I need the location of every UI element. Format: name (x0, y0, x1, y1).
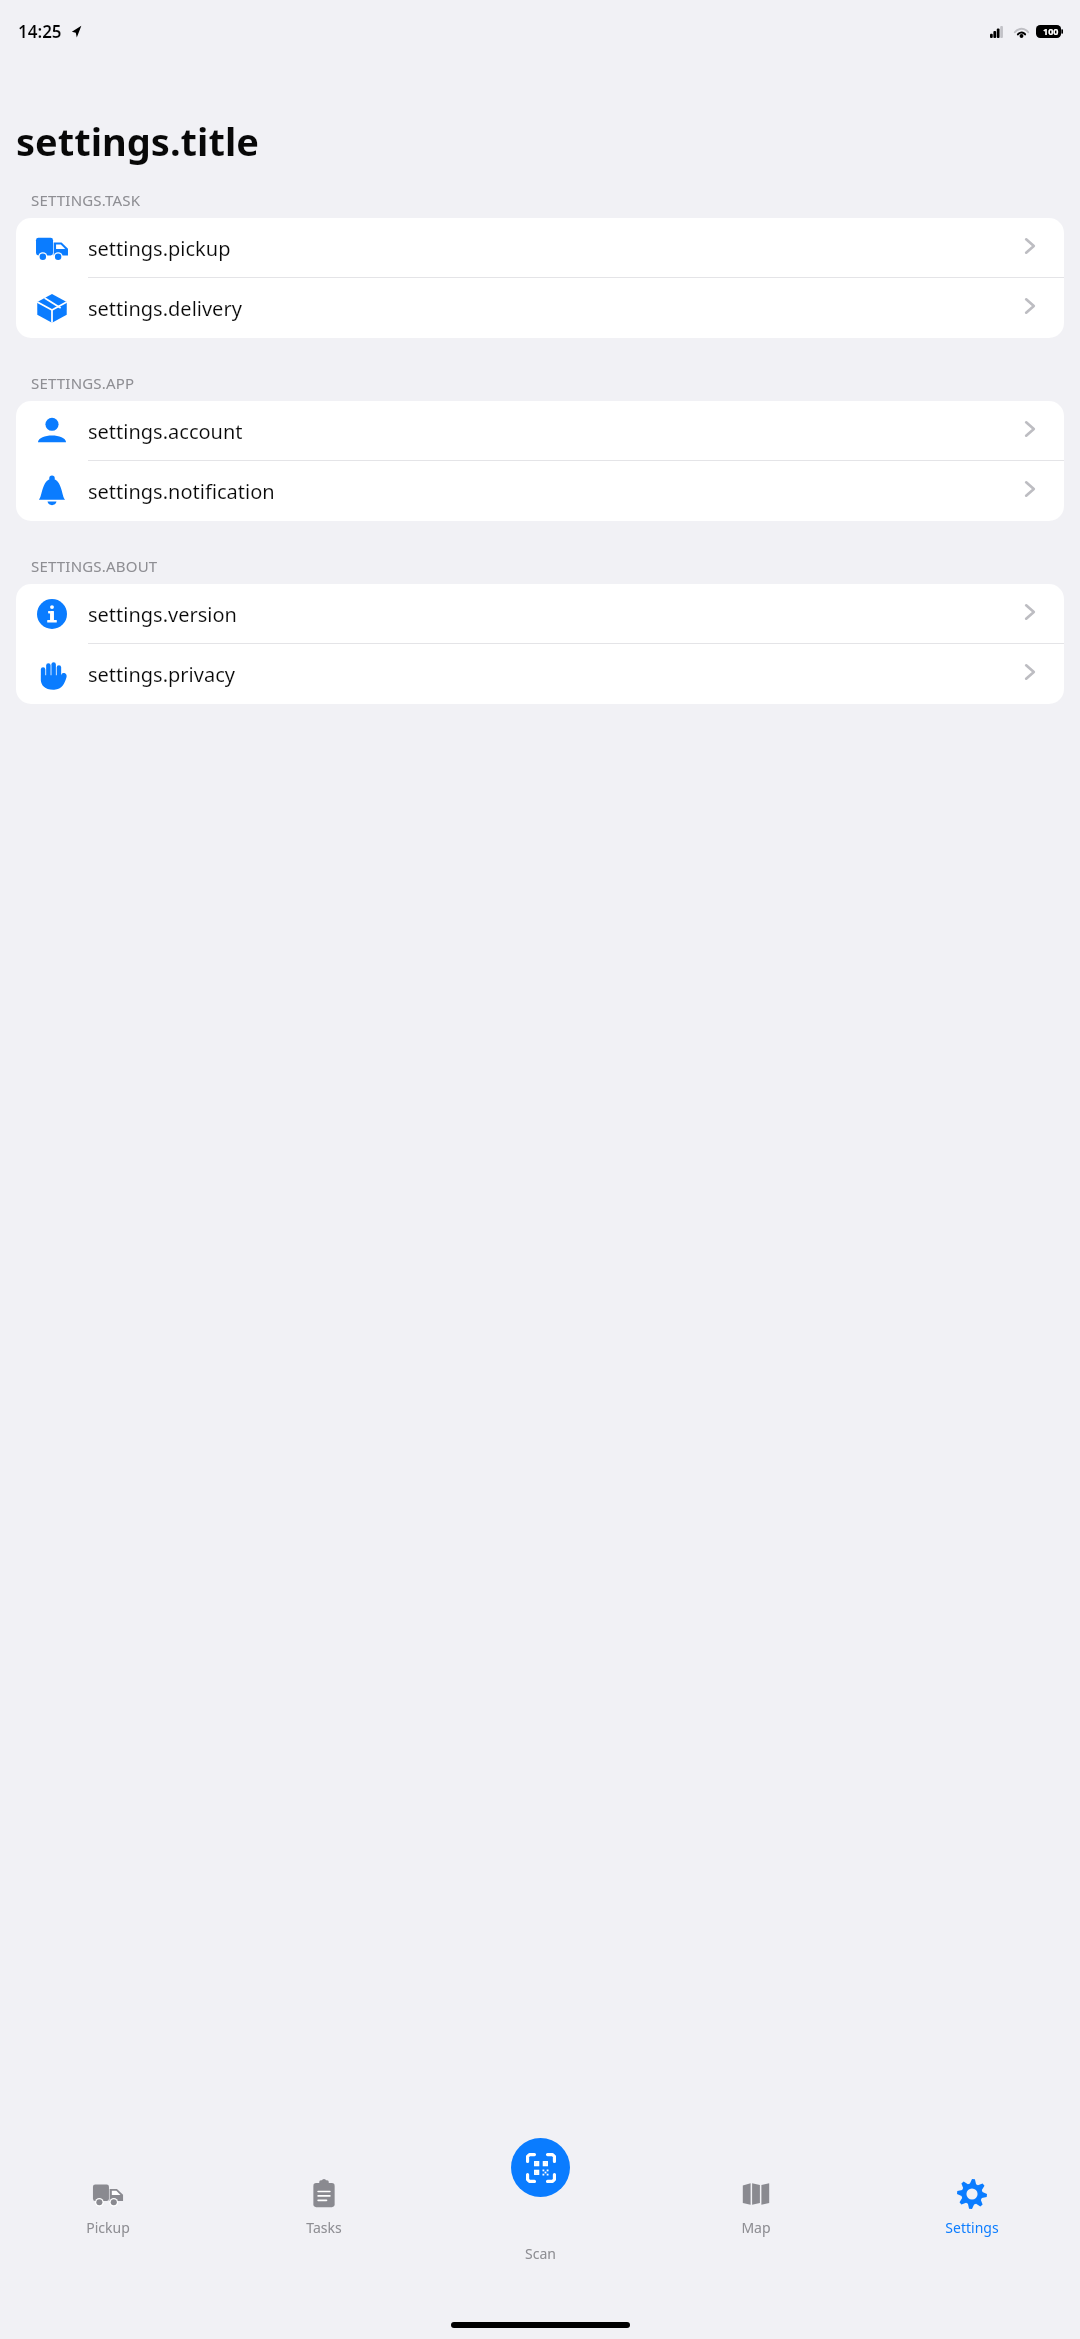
staticText: 100 (1043, 25, 1059, 37)
button[interactable]: Map (648, 2169, 864, 2289)
button[interactable]: settings.notification (16, 461, 1064, 521)
staticText: settings.delivery (88, 295, 1018, 322)
button[interactable]: settings.version (16, 584, 1064, 644)
staticText: Scan (525, 2244, 556, 2263)
staticText: settings.version (88, 601, 1018, 628)
staticText: Settings (945, 2218, 999, 2237)
staticText: settings.privacy (88, 661, 1018, 688)
staticText: settings.account (88, 418, 1018, 445)
button[interactable]: settings.pickup (16, 218, 1064, 278)
staticText: Map (741, 2218, 771, 2237)
button[interactable]: settings.delivery (16, 278, 1064, 338)
staticText: SETTINGS.TASK (31, 190, 141, 210)
button[interactable]: Scan (525, 2244, 556, 2263)
staticText: Pickup (86, 2218, 130, 2237)
staticText: Tasks (306, 2218, 342, 2237)
staticText: SETTINGS.APP (31, 373, 135, 393)
staticText: settings.pickup (88, 235, 1018, 262)
staticText: 14:25 (18, 20, 62, 43)
button[interactable]: Settings (864, 2169, 1080, 2289)
staticText: settings.title (16, 115, 259, 167)
button[interactable]: Scan (511, 2138, 570, 2197)
button[interactable]: Tasks (216, 2169, 432, 2289)
button[interactable]: settings.account (16, 401, 1064, 461)
button[interactable]: Pickup (0, 2169, 216, 2289)
staticText: settings.notification (88, 478, 1018, 505)
button[interactable]: settings.privacy (16, 644, 1064, 704)
staticText: SETTINGS.ABOUT (31, 556, 158, 576)
